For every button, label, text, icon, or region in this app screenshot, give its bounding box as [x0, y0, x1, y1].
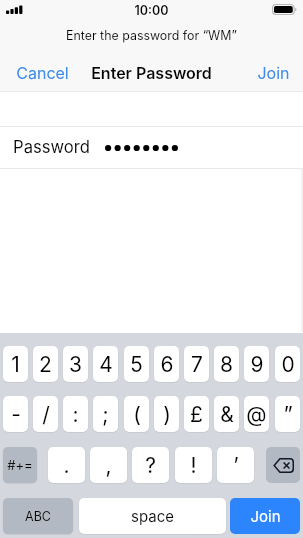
staticText: ?	[145, 453, 156, 478]
staticText: ;	[102, 402, 109, 427]
staticText: Enter Password	[91, 63, 212, 82]
staticText: space	[131, 507, 174, 525]
staticText: @	[246, 402, 267, 427]
staticText: Enter the password for “WM”	[66, 28, 237, 43]
button[interactable]: :	[63, 396, 88, 432]
staticText: 7	[191, 352, 203, 377]
button[interactable]: ’	[217, 447, 254, 483]
button[interactable]: ?	[132, 447, 169, 483]
button[interactable]: ;	[93, 396, 118, 432]
staticText: 5	[130, 352, 143, 377]
staticText: Password	[13, 137, 90, 157]
button[interactable]: £	[184, 396, 209, 432]
staticText: 2	[39, 352, 52, 377]
button[interactable]: 1	[3, 346, 28, 382]
button[interactable]: 2	[33, 346, 58, 382]
staticText: #+=	[7, 457, 33, 473]
button[interactable]: .	[48, 447, 85, 483]
staticText: )	[163, 402, 171, 427]
button[interactable]: )	[154, 396, 179, 432]
button[interactable]: ,	[90, 447, 127, 483]
staticText: :	[72, 402, 79, 427]
staticText: 10:00	[134, 3, 169, 18]
button[interactable]: ”	[275, 396, 300, 432]
staticText: 6	[160, 352, 174, 377]
button[interactable]: @	[244, 396, 269, 432]
staticText: (	[133, 402, 141, 427]
staticText: ’	[233, 453, 239, 478]
staticText: 8	[220, 352, 233, 377]
staticText: 1	[11, 352, 20, 377]
staticText: £	[190, 402, 203, 427]
button[interactable]: Password	[0, 127, 303, 168]
button[interactable]: !	[175, 447, 212, 483]
staticText: .	[63, 453, 70, 478]
button[interactable]: 6	[154, 346, 179, 382]
button[interactable]: Backspace	[266, 447, 300, 483]
button[interactable]: ABC	[3, 498, 73, 534]
staticText: Join	[250, 507, 281, 525]
button[interactable]: 5	[124, 346, 149, 382]
button[interactable]: /	[33, 396, 58, 432]
staticText: /	[42, 402, 50, 427]
button[interactable]: &	[214, 396, 239, 432]
staticText: -	[11, 402, 21, 427]
staticText: Join	[257, 63, 290, 82]
staticText: 0	[281, 352, 295, 377]
staticText: Cancel	[16, 63, 69, 82]
button[interactable]: Join	[251, 57, 296, 88]
staticText: 4	[99, 352, 113, 377]
button[interactable]: Cancel	[9, 57, 76, 88]
button[interactable]: 0	[275, 346, 300, 382]
button[interactable]: (	[124, 396, 149, 432]
button[interactable]: Join	[230, 498, 300, 534]
button[interactable]: space	[79, 498, 226, 534]
button[interactable]: -	[3, 396, 28, 432]
staticText: !	[190, 453, 197, 478]
button[interactable]: 4	[93, 346, 118, 382]
button[interactable]: 7	[184, 346, 209, 382]
staticText: ,	[105, 453, 112, 478]
staticText: ABC	[25, 509, 51, 524]
staticText: &	[220, 402, 234, 427]
button[interactable]: 8	[214, 346, 239, 382]
staticText: ”	[283, 402, 293, 427]
button[interactable]: #+=	[3, 447, 37, 483]
staticText: 9	[250, 352, 264, 377]
button[interactable]: 9	[244, 346, 269, 382]
staticText: 3	[69, 352, 82, 377]
button[interactable]: 3	[63, 346, 88, 382]
